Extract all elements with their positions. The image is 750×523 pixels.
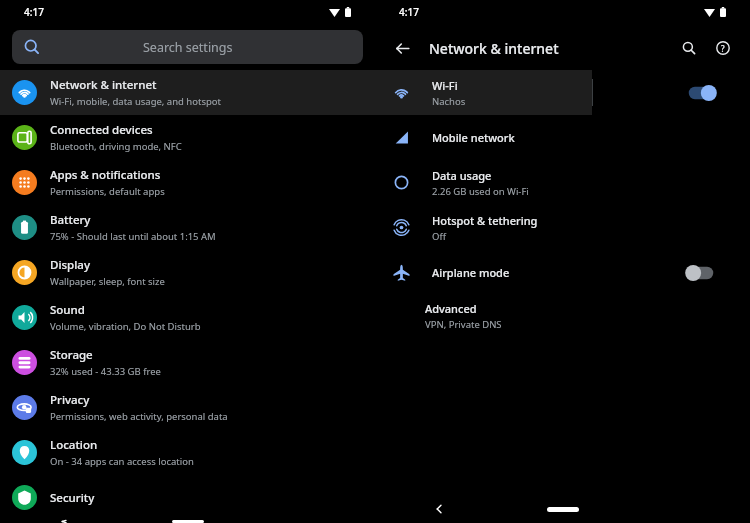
button[interactable]: Location <box>0 430 375 475</box>
button[interactable]: Display <box>0 250 375 295</box>
button[interactable]: Storage <box>0 340 375 385</box>
button[interactable]: Privacy <box>0 385 375 430</box>
staticText: Permissions, web activity, personal data <box>50 410 228 423</box>
staticText: Wi-Fi <box>432 78 458 93</box>
staticText: Connected devices <box>50 122 153 138</box>
button[interactable]: Search settings <box>12 30 363 64</box>
staticText: Off <box>432 230 446 243</box>
staticText: Security <box>50 490 95 506</box>
staticText: Mobile network <box>432 130 515 145</box>
button[interactable]: Hotspot & tethering <box>375 205 750 250</box>
staticText: Hotspot & tethering <box>432 213 538 228</box>
staticText: Volume, vibration, Do Not Disturb <box>50 320 201 333</box>
button[interactable]: Wi-Fi <box>375 70 750 115</box>
button[interactable]: Advanced <box>375 301 750 331</box>
staticText: 32% used - 43.33 GB free <box>50 365 161 378</box>
staticText: Privacy <box>50 392 90 408</box>
staticText: Advanced <box>425 301 477 316</box>
staticText: 2.26 GB used on Wi-Fi <box>432 185 529 198</box>
staticText: Network & internet <box>50 77 157 93</box>
staticText: Sound <box>50 302 85 318</box>
button[interactable]: Back <box>427 497 451 521</box>
staticText: VPN, Private DNS <box>425 318 502 331</box>
button[interactable]: Airplane mode toggle <box>684 263 718 283</box>
staticText: 4:17 <box>24 5 44 19</box>
staticText: Wallpaper, sleep, font size <box>50 275 165 288</box>
button[interactable]: Home <box>539 501 587 517</box>
button[interactable]: Network & internet <box>0 70 375 115</box>
staticText: On - 34 apps can access location <box>50 455 194 468</box>
staticText: Data usage <box>432 168 492 183</box>
staticText: Airplane mode <box>432 265 510 280</box>
staticText: 4:17 <box>399 5 419 19</box>
button[interactable]: Connected devices <box>0 115 375 160</box>
button[interactable]: Apps & notifications <box>0 160 375 205</box>
button[interactable]: Airplane mode <box>375 250 750 295</box>
staticText: Network & internet <box>429 39 559 58</box>
button[interactable]: Wi-Fi toggle <box>684 83 718 103</box>
button[interactable]: Help <box>710 35 736 61</box>
button[interactable]: Home <box>164 520 212 523</box>
staticText: Permissions, default apps <box>50 185 165 198</box>
staticText: Location <box>50 437 98 453</box>
staticText: Wi-Fi, mobile, data usage, and hotspot <box>50 95 221 108</box>
button[interactable]: Mobile network <box>375 115 750 160</box>
button[interactable]: Security <box>0 475 375 520</box>
button[interactable]: Data usage <box>375 160 750 205</box>
staticText: Nachos <box>432 95 466 108</box>
button[interactable]: Sound <box>0 295 375 340</box>
staticText: ? <box>721 43 725 54</box>
staticText: Battery <box>50 212 91 228</box>
button[interactable]: Battery <box>0 205 375 250</box>
staticText: Apps & notifications <box>50 167 161 183</box>
staticText: Bluetooth, driving mode, NFC <box>50 140 182 153</box>
button[interactable]: Back <box>389 35 415 61</box>
button[interactable]: Search <box>676 35 702 61</box>
staticText: Search settings <box>143 39 233 56</box>
button[interactable]: Back <box>52 520 76 523</box>
staticText: 75% - Should last until about 1:15 AM <box>50 230 216 243</box>
staticText: Display <box>50 257 90 273</box>
staticText: Storage <box>50 347 93 363</box>
